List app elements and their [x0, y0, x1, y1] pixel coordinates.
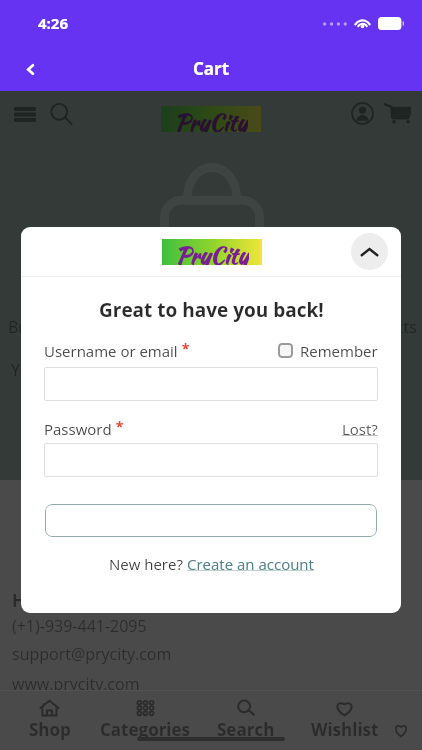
- button[interactable]: Categories: [99, 691, 192, 750]
- button[interactable]: Collapse: [351, 233, 388, 270]
- staticText: Shop: [29, 718, 71, 741]
- button[interactable]: Back: [16, 55, 44, 83]
- button[interactable]: Account: [347, 98, 377, 128]
- staticText: Password: [44, 419, 112, 437]
- button[interactable]: Log in: [45, 504, 377, 537]
- button[interactable]: Search: [192, 691, 299, 750]
- staticText: PryCity: [175, 239, 249, 265]
- staticText: New here?: [109, 554, 187, 574]
- button[interactable]: Cart: [381, 98, 415, 128]
- staticText: PryCity: [174, 106, 248, 132]
- staticText: Search: [217, 718, 275, 741]
- staticText: Categories: [100, 718, 191, 741]
- button[interactable]: Wishlist: [299, 691, 390, 750]
- button[interactable]: Create an account: [187, 554, 314, 574]
- button[interactable]: Favourites: [390, 691, 422, 750]
- button[interactable]: Text field: [44, 367, 378, 401]
- button[interactable]: Search: [46, 99, 76, 129]
- staticText: support@prycity.com: [12, 643, 172, 665]
- button[interactable]: Menu: [9, 101, 41, 127]
- staticText: *: [112, 417, 124, 435]
- staticText: www.prycity.com: [12, 673, 140, 695]
- button[interactable]: Lost?: [342, 419, 378, 437]
- staticText: Browsing our categories is a great way t…: [8, 316, 417, 338]
- staticText: Your cart is currently empty.: [11, 359, 222, 381]
- staticText: Wishlist: [311, 718, 379, 741]
- button[interactable]: Remember: [278, 341, 378, 359]
- button[interactable]: Shop: [0, 691, 99, 750]
- staticText: Cart: [193, 57, 230, 80]
- staticText: *: [178, 339, 190, 357]
- button[interactable]: Text field: [44, 443, 378, 477]
- staticText: Remember: [300, 341, 378, 359]
- staticText: Username or email: [44, 341, 178, 359]
- staticText: Great to have you back!: [99, 297, 324, 323]
- staticText: Have a question?: [12, 589, 157, 612]
- staticText: 4:26: [38, 13, 69, 33]
- staticText: (+1)-939-441-2095: [12, 615, 147, 637]
